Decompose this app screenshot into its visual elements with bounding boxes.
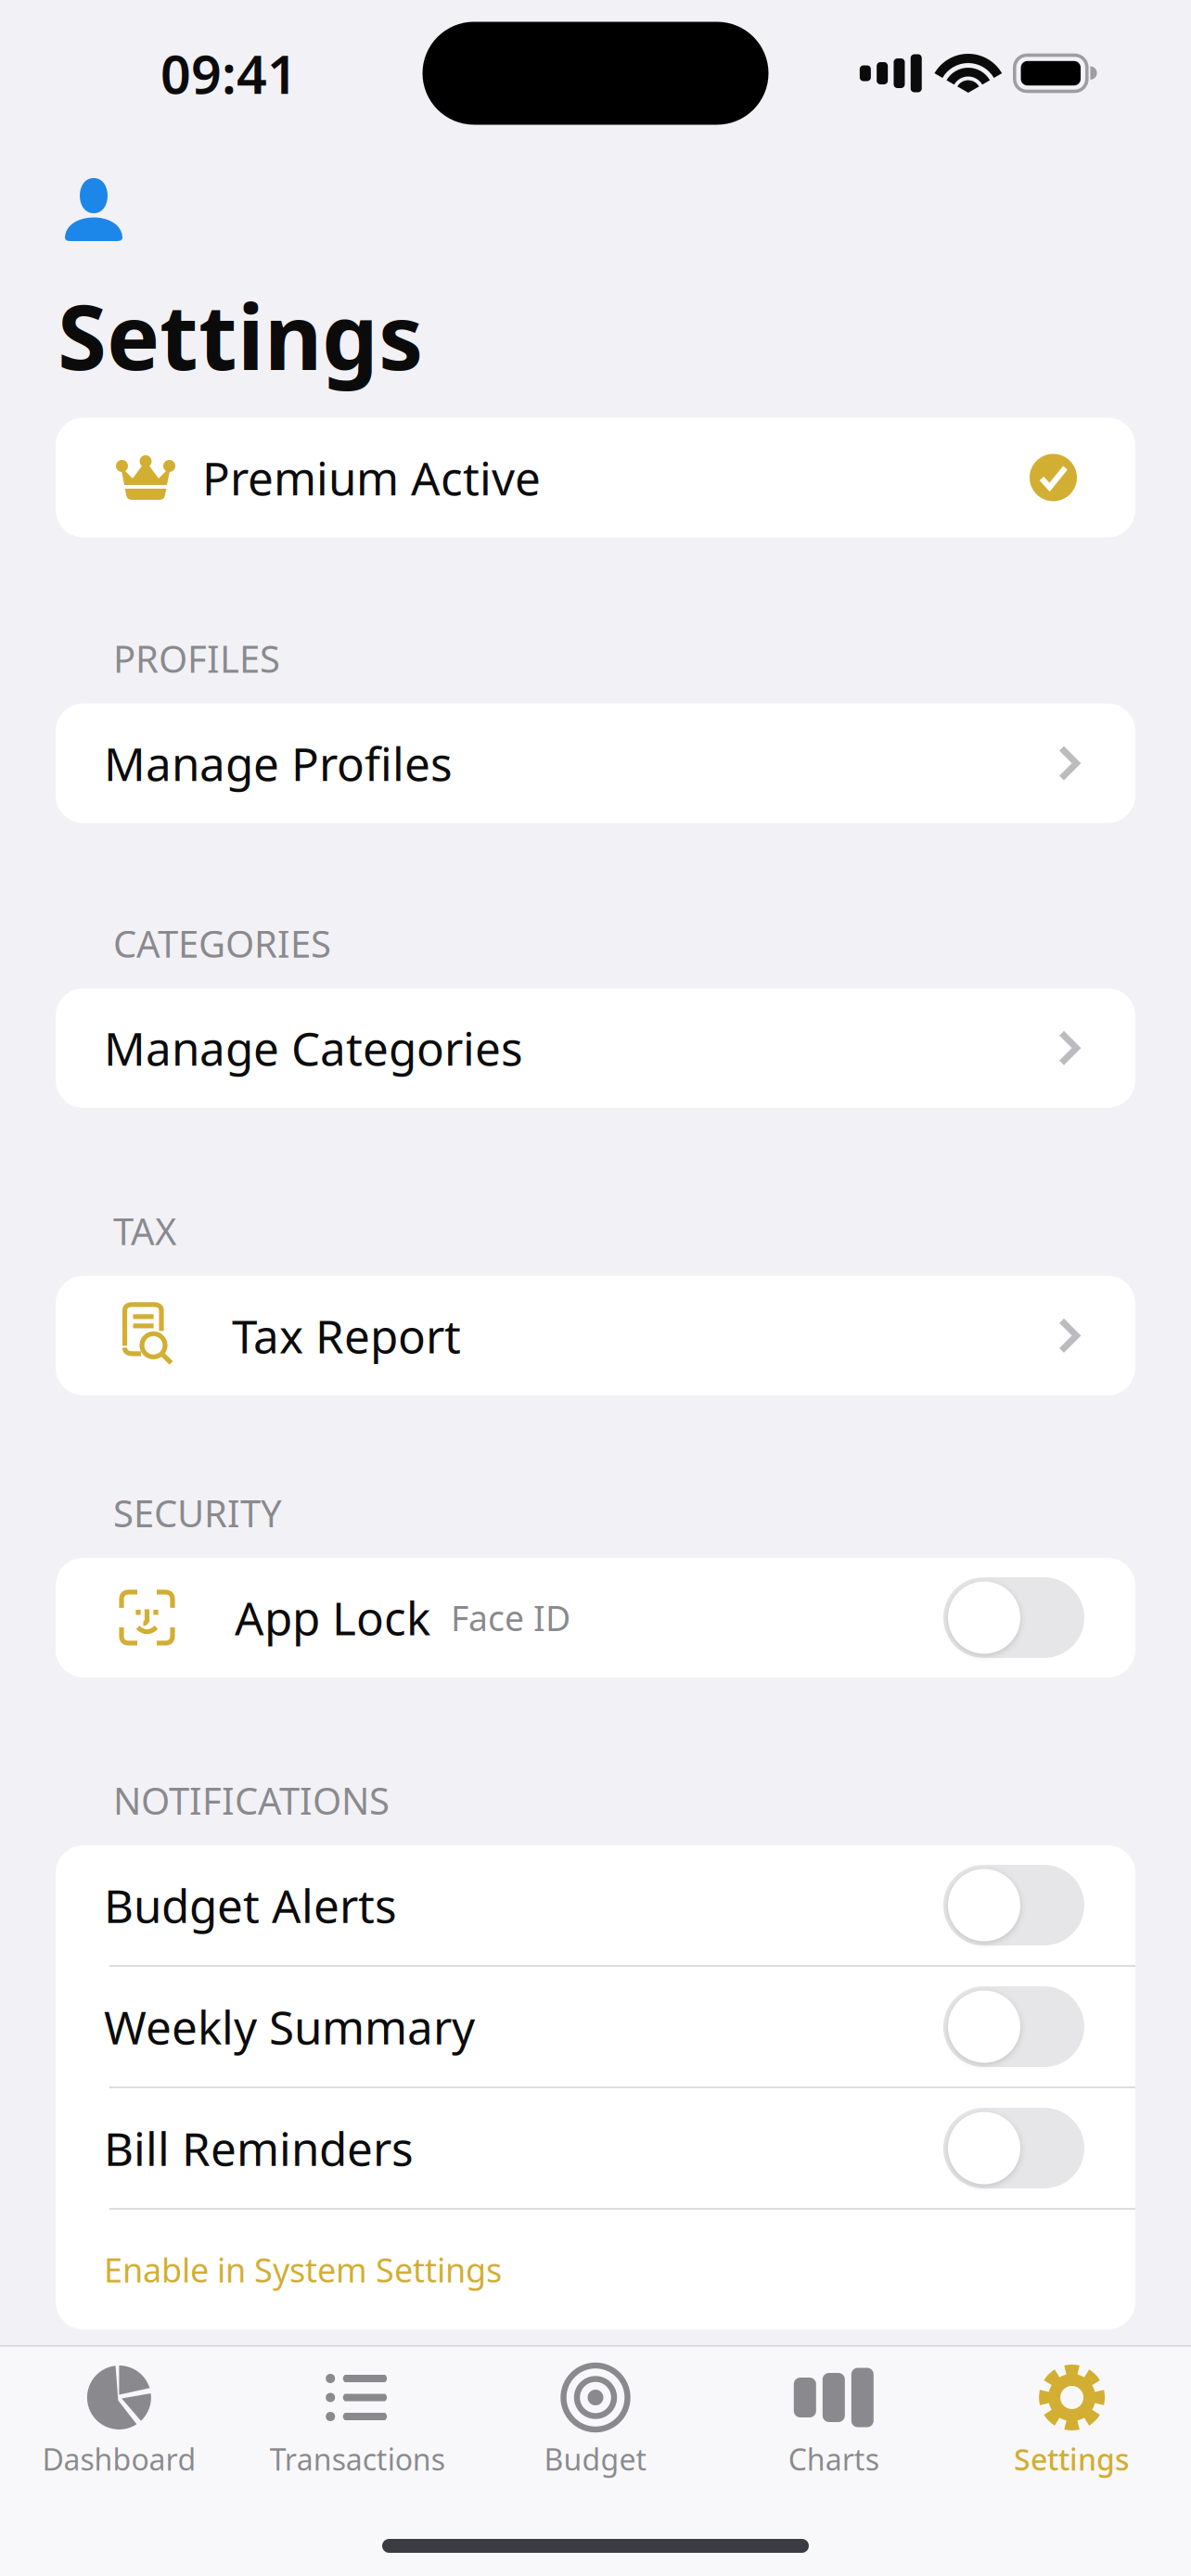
button[interactable]: Weekly Summary <box>943 1986 1084 2067</box>
button[interactable]: Profile <box>63 177 124 241</box>
button[interactable]: Enable in System Settings <box>56 2210 1135 2329</box>
staticText: CATEGORIES <box>113 919 331 968</box>
staticText: Transactions <box>270 2439 445 2479</box>
staticText: NOTIFICATIONS <box>113 1776 390 1825</box>
staticText: Manage Profiles <box>104 733 453 794</box>
staticText: Charts <box>788 2439 879 2479</box>
button[interactable]: App Lock <box>943 1577 1084 1658</box>
staticText: Manage Categories <box>104 1018 523 1078</box>
staticText: TAX <box>113 1206 176 1255</box>
button[interactable]: Charts <box>715 2346 953 2479</box>
button[interactable]: Manage Profiles <box>0 703 1191 823</box>
staticText: App Lock <box>235 1587 430 1648</box>
button[interactable]: Transactions <box>238 2346 476 2479</box>
staticText: Budget <box>544 2439 647 2479</box>
button[interactable]: Dashboard <box>0 2346 238 2479</box>
staticText: Face ID <box>451 1595 570 1641</box>
staticText: Premium Active <box>202 447 541 508</box>
button[interactable]: Bill Reminders <box>943 2108 1084 2188</box>
staticText: Bill Reminders <box>104 2118 414 2178</box>
button[interactable]: Manage Categories <box>0 988 1191 1108</box>
staticText: Enable in System Settings <box>104 2247 502 2292</box>
staticText: Tax Report <box>232 1305 461 1366</box>
staticText: Weekly Summary <box>104 1996 475 2057</box>
staticText: Settings <box>1014 2439 1130 2479</box>
button[interactable]: Tax Report <box>0 1276 1191 1395</box>
button[interactable]: Settings <box>953 2346 1191 2479</box>
button[interactable]: Budget <box>476 2346 715 2479</box>
staticText: PROFILES <box>113 634 280 683</box>
button[interactable]: Budget Alerts <box>943 1865 1084 1946</box>
staticText: SECURITY <box>113 1488 282 1537</box>
staticText: Settings <box>58 276 423 395</box>
staticText: Budget Alerts <box>104 1875 397 1936</box>
staticText: Dashboard <box>42 2439 196 2479</box>
staticText: 09:41 <box>160 38 298 108</box>
